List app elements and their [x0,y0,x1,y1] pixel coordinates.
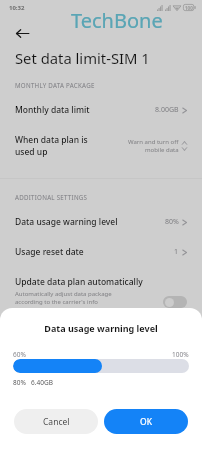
staticText: 1 [174,247,179,257]
button[interactable]: Data usage warning level slider [13,359,189,373]
staticText: Usage reset date [15,246,84,258]
button[interactable]: Update data plan automatically [0,273,202,309]
staticText: Automatically adjust data package [15,290,112,298]
staticText: TechBone [71,7,163,34]
button[interactable]: Back [10,21,34,45]
staticText: Warn and turn off [128,138,179,146]
staticText: 100% [172,350,189,359]
staticText: When data plan is [15,134,88,146]
staticText: 80% [13,378,26,387]
staticText: Data usage warning level [15,216,118,228]
staticText: according to the carrier's info [15,298,98,306]
button[interactable]: Usage reset date [0,241,202,263]
staticText: mobile data [145,146,179,154]
staticText: Data usage warning level [0,322,202,334]
button[interactable]: Update data plan automatically [163,296,187,308]
staticText: Update data plan automatically [15,276,143,288]
staticText: Monthly data limit [15,104,90,116]
button[interactable]: Data usage warning level [0,211,202,233]
staticText: 10:32 [9,4,25,12]
staticText: OK [140,416,152,428]
staticText: ADDITIONAL SETTINGS [15,193,88,201]
staticText: 8.00GB [155,105,179,115]
button[interactable]: Cancel [14,409,98,434]
staticText: used up [15,146,48,158]
staticText: Set data limit-SIM 1 [15,48,150,68]
staticText: 80% [165,217,179,227]
staticText: Cancel [43,416,70,428]
staticText: MONTHLY DATA PACKAGE [15,81,95,89]
button[interactable]: OK [104,409,188,434]
button[interactable]: Monthly data limit [0,99,202,121]
staticText: 6.40GB [31,378,53,387]
staticText: 100 [185,5,193,11]
button[interactable]: When data plan is [0,131,202,161]
staticText: 60% [13,350,26,359]
